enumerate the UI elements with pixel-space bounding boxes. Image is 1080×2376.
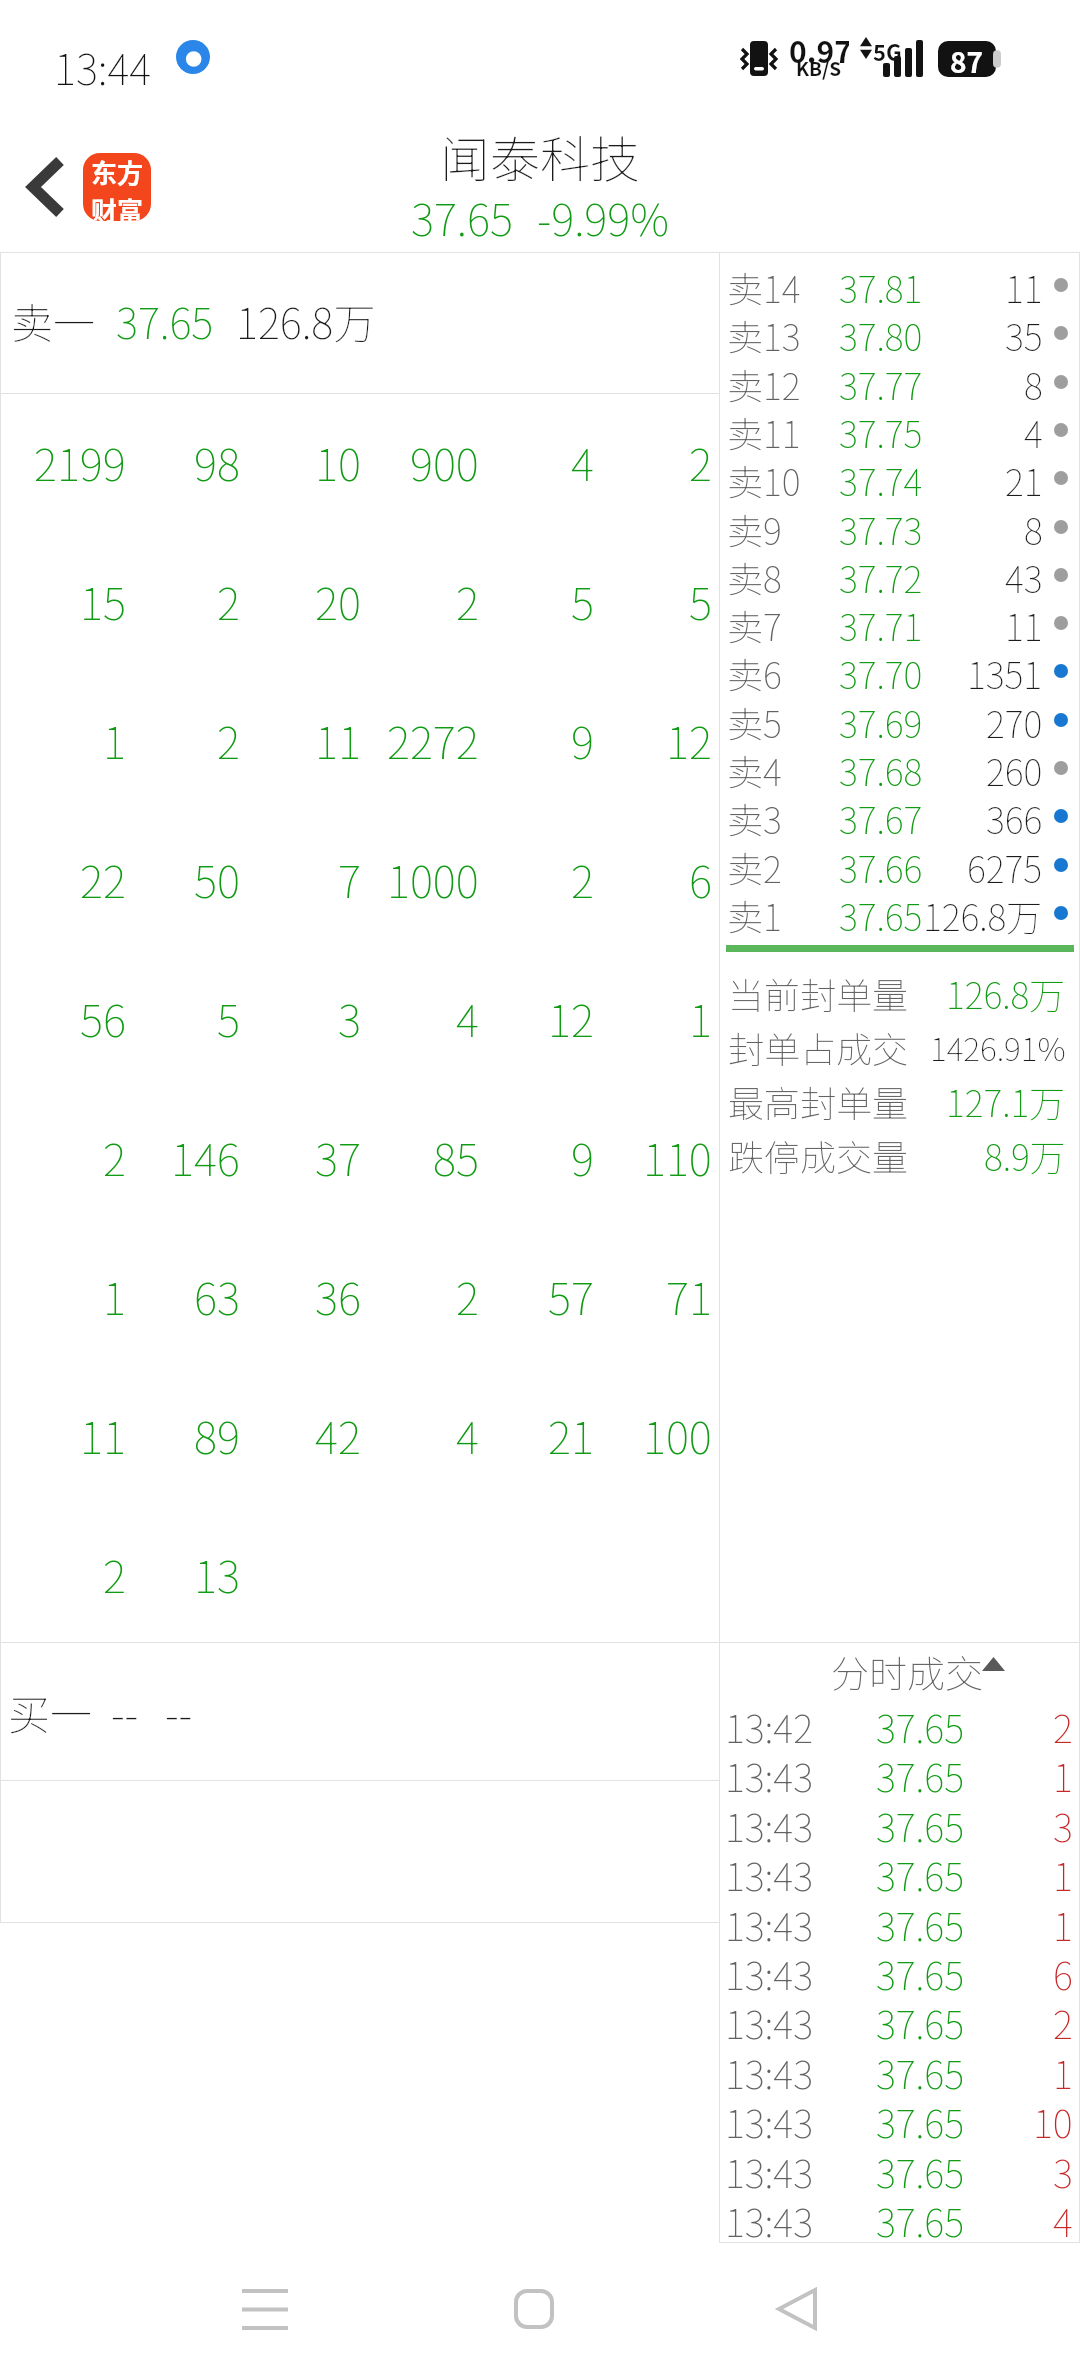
staticText: 127.1万 [946, 1075, 1066, 1127]
button[interactable]: 卖11 [720, 406, 1079, 454]
staticText: 146 [171, 1125, 240, 1189]
staticText: 1 [103, 708, 126, 772]
staticText: 37.77 [839, 358, 923, 406]
staticText: 15 [80, 569, 126, 633]
staticText: 4 [571, 430, 594, 494]
button[interactable]: 当前封单量 [720, 966, 1079, 1020]
staticText: 3 [1053, 1798, 1073, 1848]
staticText: 0.97 [789, 28, 849, 71]
button[interactable]: 13:43 [720, 1946, 1079, 1996]
staticText: 卖10 [727, 454, 801, 502]
button[interactable]: 13:43 [720, 2094, 1079, 2144]
staticText: 卖3 [727, 792, 782, 840]
button[interactable]: 跌停成交量 [720, 1128, 1079, 1182]
staticText: 4 [456, 1403, 479, 1467]
staticText: 57 [548, 1264, 594, 1328]
staticText: 东方 [91, 153, 144, 191]
button[interactable]: Back [3, 145, 87, 229]
staticText: 71 [666, 1264, 712, 1328]
staticText: 2272 [387, 708, 479, 772]
staticText: 37.65 [411, 185, 513, 249]
button[interactable]: 13:43 [720, 1995, 1079, 2045]
staticText: 50 [194, 847, 240, 911]
staticText: 100 [643, 1403, 712, 1467]
staticText: 11 [80, 1403, 126, 1467]
staticText: 900 [410, 430, 479, 494]
staticText: 卖2 [727, 841, 782, 889]
button[interactable]: 卖3 [720, 792, 1079, 840]
button[interactable]: Recent apps [195, 2249, 335, 2369]
staticText: 98 [194, 430, 240, 494]
staticText: 卖6 [727, 647, 782, 695]
button[interactable]: 13:43 [720, 1798, 1079, 1848]
button[interactable]: 卖13 [720, 309, 1079, 357]
staticText: 2 [217, 708, 240, 772]
button[interactable]: 卖7 [720, 599, 1079, 647]
staticText: 36 [315, 1264, 361, 1328]
staticText: 126.8万 [923, 889, 1043, 937]
staticText: 卖11 [727, 406, 801, 454]
staticText: 2 [456, 1264, 479, 1328]
staticText: 21 [548, 1403, 594, 1467]
staticText: KB/S [796, 54, 842, 82]
staticText: 110 [643, 1125, 712, 1189]
staticText: 63 [194, 1264, 240, 1328]
staticText: 卖7 [727, 599, 782, 647]
button[interactable]: 买一 [0, 1643, 719, 1780]
staticText: 5 [689, 569, 712, 633]
staticText: 37.69 [839, 696, 923, 744]
staticText: 3 [338, 986, 361, 1050]
staticText: 10 [315, 430, 361, 494]
button[interactable]: 卖8 [720, 551, 1079, 599]
button[interactable]: East Money logo [83, 153, 151, 221]
button[interactable]: 13:43 [720, 2193, 1079, 2243]
button[interactable]: 13:42 [720, 1699, 1079, 1749]
staticText: 37.71 [839, 599, 923, 647]
staticText: 37.65 [876, 1897, 964, 1947]
button[interactable]: 卖一 [0, 250, 719, 390]
staticText: 13:43 [725, 2193, 813, 2243]
button[interactable]: 卖10 [720, 454, 1079, 502]
staticText: 37.65 [876, 2193, 964, 2243]
staticText: 13:43 [725, 2144, 813, 2194]
staticText: -- [111, 1681, 139, 1742]
button[interactable]: 卖9 [720, 503, 1079, 551]
button[interactable]: 13:43 [720, 1748, 1079, 1798]
staticText: 1 [1053, 2045, 1073, 2095]
button[interactable]: 卖6 [720, 647, 1079, 695]
button[interactable]: Home [464, 2249, 604, 2369]
staticText: 37.73 [839, 503, 923, 551]
staticText: 封单占成交 [728, 1021, 909, 1073]
staticText: 财富 [91, 191, 144, 221]
staticText: 37.65 [839, 889, 923, 937]
button[interactable]: 卖5 [720, 696, 1079, 744]
staticText: 最高封单量 [728, 1075, 909, 1127]
staticText: 366 [986, 792, 1043, 840]
button[interactable]: 卖2 [720, 841, 1079, 889]
button[interactable]: Back [727, 2249, 867, 2369]
staticText: 37.65 [876, 1798, 964, 1848]
button[interactable]: 分时成交 [720, 1643, 1079, 1698]
button[interactable]: 最高封单量 [720, 1074, 1079, 1128]
button[interactable]: 13:43 [720, 1897, 1079, 1947]
button[interactable]: 卖12 [720, 358, 1079, 406]
staticText: 2 [217, 569, 240, 633]
staticText: 35 [1005, 309, 1043, 357]
button[interactable]: 13:43 [720, 2045, 1079, 2095]
staticText: 2 [103, 1542, 126, 1606]
button[interactable]: 13:43 [720, 2144, 1079, 2194]
staticText: 1351 [967, 647, 1043, 695]
button[interactable]: 卖14 [720, 261, 1079, 309]
button[interactable]: 卖1 [720, 889, 1079, 937]
button[interactable]: 封单占成交 [720, 1020, 1079, 1074]
staticText: 12 [548, 986, 594, 1050]
staticText: -9.99% [537, 185, 669, 249]
staticText: 卖一 [11, 290, 96, 351]
staticText: 2 [1053, 1699, 1073, 1749]
button[interactable]: 13:43 [720, 1847, 1079, 1897]
button[interactable]: 卖4 [720, 744, 1079, 792]
staticText: 37.80 [839, 309, 923, 357]
staticText: 1 [1053, 1847, 1073, 1897]
staticText: 7 [338, 847, 361, 911]
staticText: 买一 [8, 1681, 93, 1742]
